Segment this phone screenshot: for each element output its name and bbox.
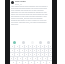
button[interactable] — [10, 45, 14, 48]
button[interactable] — [25, 45, 28, 48]
button[interactable] — [20, 53, 24, 56]
button[interactable] — [23, 61, 28, 64]
button[interactable] — [35, 61, 40, 64]
button[interactable] — [20, 45, 24, 48]
button[interactable] — [29, 45, 32, 48]
button[interactable] — [47, 61, 52, 64]
button[interactable] — [17, 61, 22, 64]
button[interactable] — [15, 45, 19, 48]
button[interactable] — [29, 49, 32, 52]
button[interactable] — [38, 57, 42, 60]
button[interactable] — [33, 53, 36, 56]
button[interactable]: Send — [44, 39, 52, 45]
button[interactable] — [45, 49, 48, 52]
button[interactable]: Amy Chen — [11, 0, 52, 5]
staticText: This might still be some problem for the… — [11, 5, 48, 25]
button[interactable] — [15, 49, 19, 52]
button[interactable] — [37, 49, 40, 52]
button[interactable] — [41, 49, 44, 52]
button[interactable]: More — [28, 39, 36, 45]
button[interactable] — [41, 61, 46, 64]
button[interactable] — [10, 61, 16, 64]
button[interactable] — [15, 53, 19, 56]
button[interactable] — [49, 53, 52, 56]
button[interactable] — [23, 57, 27, 60]
button[interactable] — [41, 45, 44, 48]
button[interactable] — [28, 57, 32, 60]
button[interactable] — [10, 53, 14, 56]
button[interactable] — [10, 57, 13, 60]
button[interactable] — [37, 53, 40, 56]
button[interactable] — [25, 49, 28, 52]
button[interactable] — [49, 49, 52, 52]
button[interactable]: Emoji — [36, 39, 44, 45]
staticText: Amy Chen — [15, 0, 26, 3]
button[interactable] — [33, 49, 36, 52]
button[interactable] — [25, 53, 28, 56]
button[interactable] — [49, 45, 52, 48]
button[interactable] — [45, 45, 48, 48]
button[interactable] — [37, 45, 40, 48]
button[interactable] — [29, 61, 34, 64]
button[interactable] — [14, 57, 17, 60]
button[interactable]: Attach — [19, 39, 28, 45]
button[interactable] — [48, 57, 52, 60]
button[interactable] — [45, 53, 48, 56]
staticText: to me, +2 — [15, 3, 22, 5]
button[interactable] — [20, 49, 24, 52]
button[interactable] — [10, 49, 14, 52]
button[interactable] — [41, 53, 44, 56]
button[interactable] — [33, 45, 36, 48]
button[interactable] — [43, 57, 47, 60]
button[interactable] — [18, 57, 22, 60]
button[interactable]: Reply — [10, 39, 19, 45]
button[interactable] — [29, 53, 32, 56]
button[interactable] — [33, 57, 37, 60]
